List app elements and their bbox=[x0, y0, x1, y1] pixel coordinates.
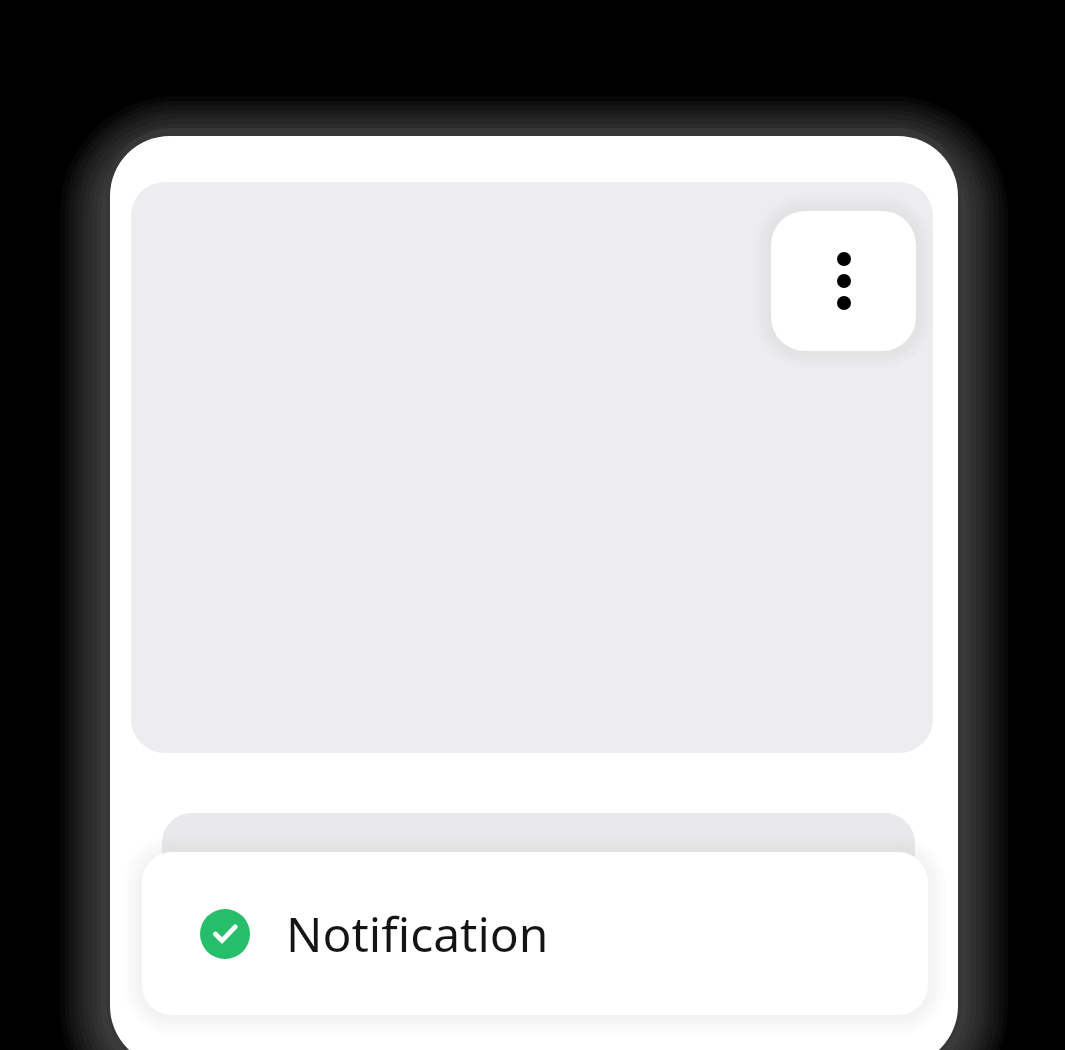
button[interactable]: Notification bbox=[142, 852, 928, 1015]
staticText: Notification bbox=[286, 901, 549, 966]
button[interactable]: More options bbox=[131, 182, 933, 753]
button[interactable]: More options bbox=[771, 211, 916, 351]
